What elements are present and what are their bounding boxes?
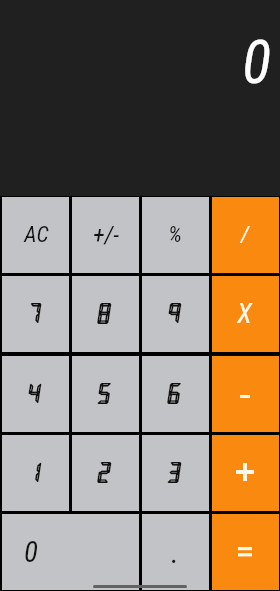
staticText: 0 — [24, 535, 38, 569]
button[interactable]: 6 — [142, 356, 209, 432]
staticText: 1 — [26, 459, 42, 484]
staticText: 9 — [166, 300, 182, 325]
button[interactable]: Decimal point — [142, 514, 209, 590]
button[interactable]: 2 — [72, 435, 139, 511]
staticText: . — [171, 535, 179, 570]
button[interactable]: Divide — [212, 197, 279, 273]
button[interactable]: 3 — [142, 435, 209, 511]
staticText: 8 — [96, 300, 112, 325]
button[interactable]: Toggle sign — [72, 197, 139, 273]
button[interactable]: 4 — [2, 356, 69, 432]
button[interactable]: 0 — [2, 514, 139, 590]
staticText: X — [237, 298, 252, 330]
button[interactable]: Multiply — [212, 276, 279, 352]
staticText: 3 — [166, 459, 182, 484]
button[interactable]: 1 — [2, 435, 69, 511]
button[interactable]: All clear — [2, 197, 69, 273]
staticText: / — [241, 222, 249, 248]
button[interactable]: Add — [212, 435, 279, 511]
staticText: 0 — [242, 27, 271, 97]
staticText: +/- — [93, 221, 119, 249]
staticText: 2 — [96, 459, 112, 484]
staticText: AC — [24, 222, 49, 248]
staticText: 4 — [26, 380, 42, 405]
staticText: 5 — [96, 380, 112, 405]
button[interactable]: 7 — [2, 276, 69, 352]
staticText: % — [168, 222, 182, 248]
button[interactable]: Subtract — [212, 356, 279, 432]
staticText: 6 — [166, 380, 182, 405]
staticText: 7 — [26, 300, 42, 325]
button[interactable]: Equals — [212, 514, 279, 590]
button[interactable]: Percent — [142, 197, 209, 273]
button[interactable]: 8 — [72, 276, 139, 352]
button[interactable]: 5 — [72, 356, 139, 432]
button[interactable]: 9 — [142, 276, 209, 352]
